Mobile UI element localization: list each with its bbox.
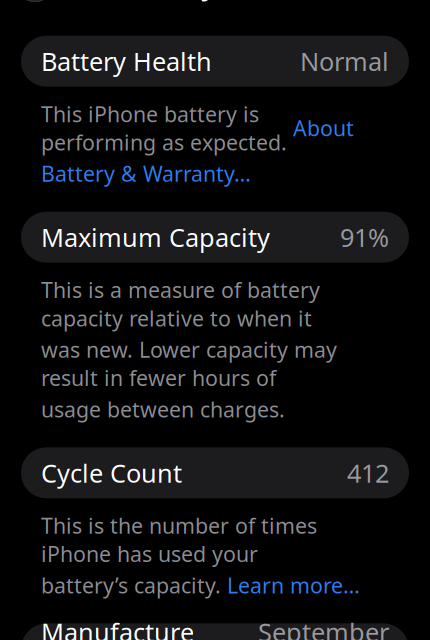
staticText: Battery Health	[117, 0, 313, 2]
button[interactable]: Maximum Capacity	[21, 212, 409, 263]
staticText: Cycle Count	[41, 456, 182, 490]
staticText: This is a measure of battery capacity re…	[41, 276, 320, 332]
staticText: September 2023	[258, 615, 389, 640]
button[interactable]: Back	[13, 0, 57, 6]
staticText: 91%	[340, 220, 389, 254]
staticText: Learn more…	[227, 571, 360, 599]
button[interactable]: Battery Health	[21, 36, 409, 87]
staticText: Normal	[300, 44, 389, 78]
button[interactable]: Cycle Count	[21, 447, 409, 498]
staticText: About	[293, 114, 354, 142]
button[interactable]: Manufacture Date	[21, 623, 409, 640]
staticText: Manufacture Date	[41, 615, 194, 640]
staticText: This is the number of times iPhone has u…	[41, 511, 317, 568]
staticText: This iPhone battery is performing as exp…	[41, 100, 293, 156]
staticText: Battery Health	[41, 44, 212, 78]
staticText: 412	[347, 456, 389, 490]
staticText: was new. Lower capacity may result in fe…	[41, 335, 337, 392]
staticText: Maximum Capacity	[41, 220, 270, 254]
staticText: battery’s capacity.	[41, 571, 227, 599]
staticText: usage between charges.	[41, 395, 285, 423]
staticText: Battery & Warranty…	[41, 159, 251, 188]
